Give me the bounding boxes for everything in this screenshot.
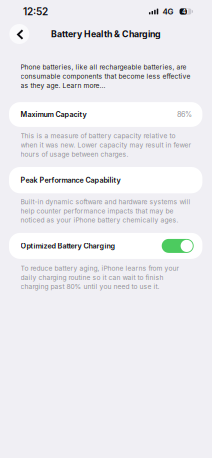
staticText: Maximum Capacity — [20, 110, 86, 119]
staticText: Built-in dynamic software and hardware s… — [21, 198, 191, 224]
button[interactable]: Back — [9, 24, 29, 44]
staticText: Phone batteries, like all rechargeable b… — [21, 63, 191, 89]
staticText: Optimized Battery Charging — [20, 241, 115, 250]
staticText: 4G — [162, 7, 173, 16]
staticText: 41 — [182, 8, 189, 15]
staticText: Battery Health & Charging — [51, 29, 161, 39]
staticText: Peak Performance Capability — [20, 176, 120, 184]
staticText: 86% — [177, 110, 192, 119]
button[interactable]: Optimized Battery Charging — [162, 239, 192, 253]
staticText: 12:52 — [23, 5, 48, 18]
staticText: To reduce battery aging, iPhone learns f… — [21, 264, 180, 291]
staticText: This is a measure of battery capacity re… — [21, 132, 192, 158]
